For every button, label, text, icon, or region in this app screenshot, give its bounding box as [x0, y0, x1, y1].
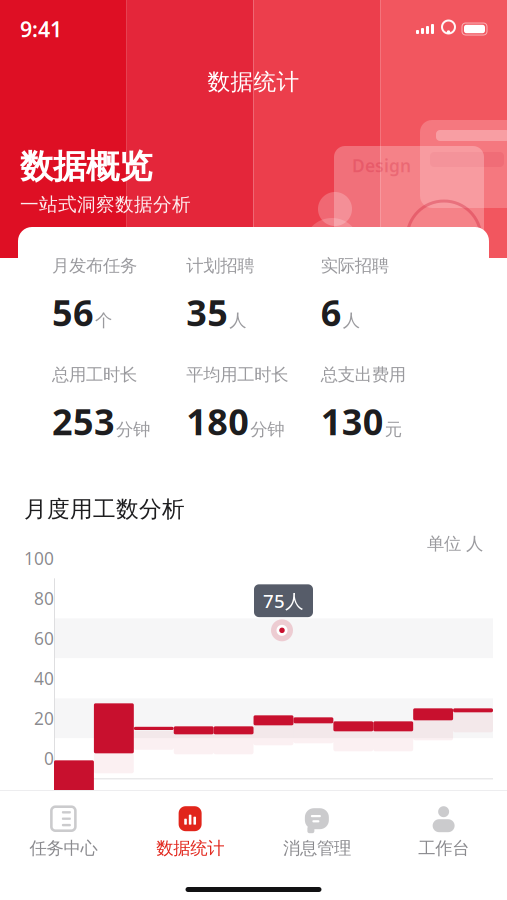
staticText: 计划招聘	[186, 255, 254, 276]
staticText: 9:41	[20, 15, 62, 43]
staticText: 任务中心	[29, 838, 97, 859]
staticText: 20	[34, 707, 54, 730]
staticText: 35	[186, 288, 228, 336]
staticText: 0	[44, 747, 54, 770]
staticText: 10月	[438, 806, 475, 829]
staticText: 56	[52, 288, 94, 336]
staticText: 总用工时长	[52, 364, 137, 385]
staticText: 平均用工时长	[186, 364, 288, 385]
button[interactable]: 消息管理	[253, 797, 380, 867]
staticText: 60	[34, 627, 54, 650]
staticText: 分钟	[250, 419, 284, 440]
staticText: 人	[229, 310, 246, 331]
staticText: 6	[321, 288, 342, 336]
staticText: 80	[34, 587, 54, 610]
staticText: 人	[343, 310, 360, 331]
staticText: 月发布任务	[52, 255, 137, 276]
staticText: 253	[52, 397, 115, 445]
button[interactable]: 任务中心	[0, 797, 127, 867]
staticText: 数据概览	[20, 146, 152, 187]
staticText: 月度用工数分析	[24, 495, 185, 523]
button[interactable]: 工作台	[380, 797, 507, 867]
staticText: 40	[34, 667, 54, 690]
staticText: 180	[186, 397, 249, 445]
staticText: 总支出费用	[321, 364, 406, 385]
staticText: 数据统计	[207, 68, 299, 96]
staticText: 分钟	[116, 419, 150, 440]
staticText: 数据统计	[156, 838, 224, 859]
staticText: 消息管理	[283, 838, 351, 859]
staticText: 100	[24, 547, 54, 570]
staticText: 工作台	[418, 838, 469, 859]
staticText: 一站式洞察数据分析	[20, 193, 191, 216]
staticText: 单位 人	[427, 533, 483, 554]
staticText: 75人	[263, 588, 304, 613]
button[interactable]: 数据统计	[127, 797, 254, 867]
staticText: 元	[385, 419, 402, 440]
staticText: 130	[321, 397, 384, 445]
staticText: 个	[95, 310, 112, 331]
staticText: 实际招聘	[321, 255, 389, 276]
staticText: 8月	[297, 806, 324, 829]
staticText: Design	[352, 154, 411, 177]
